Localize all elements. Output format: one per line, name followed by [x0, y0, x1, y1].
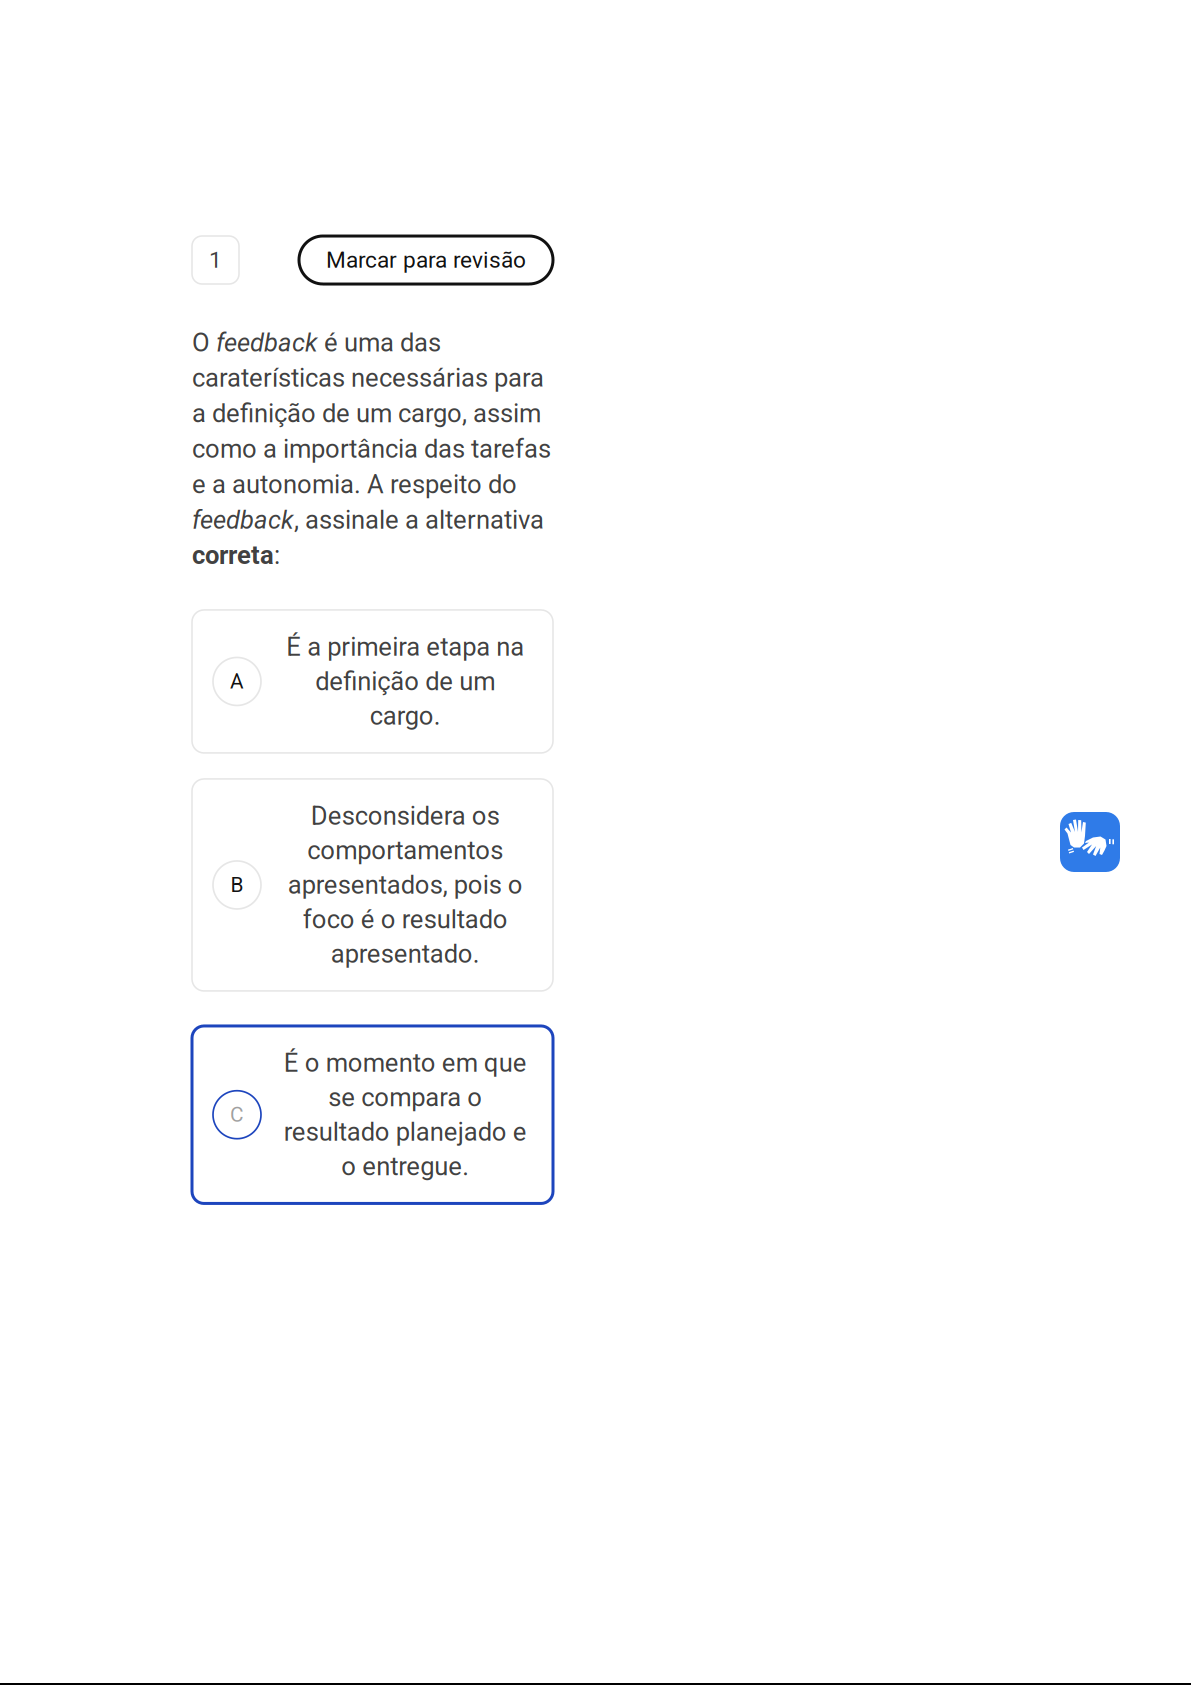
- staticText: C: [230, 1102, 244, 1127]
- staticText: 1: [209, 247, 222, 273]
- staticText: É a primeira etapa na definição de um ca…: [286, 632, 524, 731]
- staticText: Marcar para revisão: [326, 247, 526, 273]
- button[interactable]: A: [192, 610, 553, 753]
- button[interactable]: C: [192, 1026, 553, 1203]
- button[interactable]: Marcar para revisão: [299, 236, 553, 284]
- button[interactable]: VLibras — tradutor de Libras: [1060, 812, 1120, 872]
- staticText: O feedback é uma das caraterísticas nece…: [192, 328, 551, 570]
- button[interactable]: B: [192, 779, 553, 991]
- staticText: B: [230, 873, 243, 897]
- staticText: É o momento em que se compara o resultad…: [283, 1048, 526, 1181]
- staticText: A: [230, 669, 244, 694]
- staticText: Desconsidera os comportamentos apresenta…: [287, 801, 522, 969]
